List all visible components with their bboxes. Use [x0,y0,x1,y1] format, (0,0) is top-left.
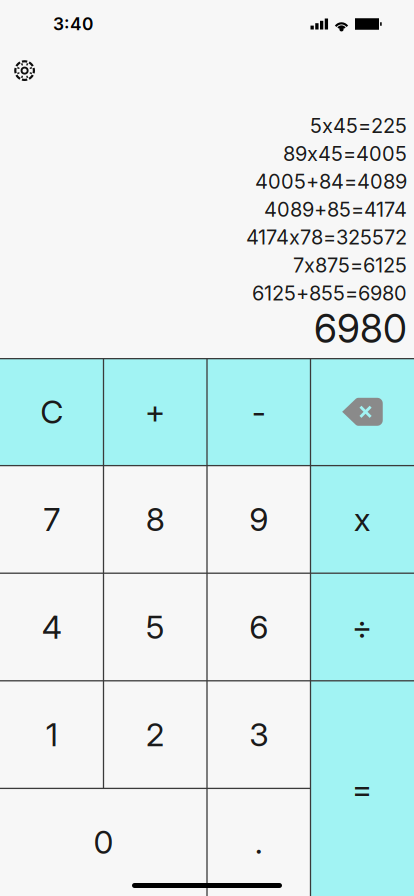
staticText: 4089+85=4174 [264,197,407,221]
staticText: + [145,392,166,431]
staticText: 5 [146,608,165,646]
staticText: 8 [146,500,165,539]
staticText: - [252,392,266,431]
button[interactable]: ÷ [310,573,414,681]
button[interactable]: x [310,466,414,573]
button[interactable]: 4 [0,573,103,681]
button[interactable]: 3 [207,681,310,788]
button[interactable]: 0 [0,788,207,896]
button[interactable]: 5 [103,573,207,681]
staticText: 4 [42,608,62,646]
staticText: . [255,823,263,861]
button[interactable]: 1 [0,681,103,788]
button[interactable]: 8 [103,466,207,573]
staticText: x [354,500,371,539]
staticText: 6125+855=6980 [252,281,407,305]
staticText: 4005+84=4089 [255,169,407,194]
button[interactable]: - [207,358,310,466]
button[interactable]: Delete [310,358,414,466]
staticText: 89x45=4005 [283,141,407,166]
staticText: C [40,392,63,431]
staticText: 3 [249,715,268,754]
staticText: = [352,769,373,808]
button[interactable]: 9 [207,466,310,573]
button[interactable]: + [103,358,207,466]
staticText: 4174x78=325572 [246,225,407,249]
staticText: 1 [46,715,58,754]
staticText: ÷ [352,608,373,646]
staticText: 7 [43,500,60,539]
staticText: 6 [249,608,268,646]
staticText: 6980 [314,305,407,352]
staticText: 7x875=6125 [293,253,407,277]
staticText: 2 [146,715,165,754]
button[interactable]: 6 [207,573,310,681]
staticText: 5x45=225 [310,114,407,138]
button[interactable]: Settings [0,52,47,89]
button[interactable]: 2 [103,681,207,788]
staticText: 0 [93,823,113,861]
button[interactable]: . [207,788,310,896]
staticText: 3:40 [53,13,93,34]
button[interactable]: C [0,358,103,466]
button[interactable]: 7 [0,466,103,573]
button[interactable]: = [310,681,414,896]
staticText: 9 [249,500,268,539]
